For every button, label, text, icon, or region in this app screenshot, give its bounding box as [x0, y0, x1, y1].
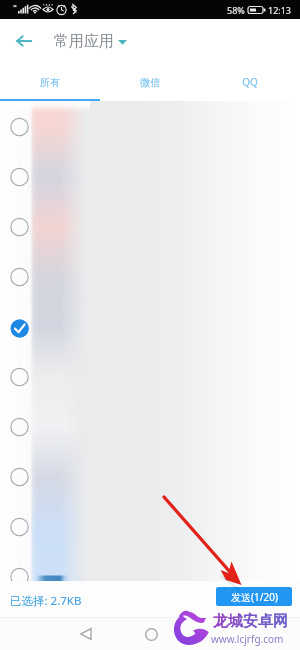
staticText: QQ: [242, 75, 258, 89]
staticText: www.lcjrfg.com: [211, 632, 284, 646]
button[interactable]: 常用应用: [54, 32, 127, 51]
button[interactable]: Recents: [200, 622, 224, 646]
staticText: 常用应用: [54, 32, 114, 51]
button[interactable]: 微信: [100, 63, 200, 101]
staticText: 微信: [140, 76, 160, 89]
staticText: 已选择: 2.7KB: [10, 593, 82, 609]
button[interactable]: Home: [139, 622, 163, 646]
button[interactable]: QQ: [200, 63, 300, 101]
button[interactable]: Back: [10, 27, 38, 55]
staticText: 发送(1/20): [231, 590, 278, 604]
staticText: 12:13: [268, 4, 292, 16]
button[interactable]: 所有: [0, 63, 100, 101]
button[interactable]: 发送(1/20): [216, 587, 292, 606]
button[interactable]: Back: [74, 622, 98, 646]
staticText: 龙城安卓网: [213, 612, 288, 631]
staticText: 所有: [40, 76, 60, 89]
staticText: 58%: [227, 4, 245, 16]
